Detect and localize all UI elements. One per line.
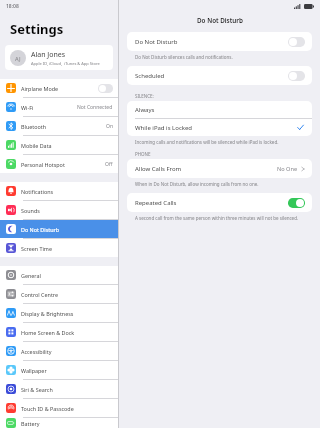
staticText: When in Do Not Disturb, allow incoming c… [135, 181, 259, 187]
staticText: Home Screen & Dock [21, 329, 75, 336]
staticText: Wi-Fi [21, 104, 34, 111]
button[interactable]: While iPad is Locked [127, 119, 312, 136]
staticText: Airplane Mode [21, 85, 59, 92]
button[interactable]: Bluetooth [0, 117, 118, 135]
button[interactable]: Repeated Calls [127, 193, 312, 212]
staticText: Mobile Data [21, 142, 52, 149]
staticText: Do Not Disturb [21, 226, 60, 233]
button[interactable]: Battery [0, 418, 118, 428]
button[interactable]: Toggle [98, 84, 113, 93]
button[interactable]: Touch ID & Passcode [0, 399, 118, 417]
staticText: Control Centre [21, 291, 59, 298]
staticText: Accessibility [21, 348, 52, 355]
staticText: Battery [21, 420, 40, 427]
staticText: A second call from the same person withi… [135, 215, 299, 221]
staticText: Sounds [21, 207, 40, 214]
button[interactable]: Airplane Mode [0, 79, 118, 97]
button[interactable]: Always [127, 101, 312, 118]
staticText: Screen Time [21, 245, 52, 252]
staticText: Display & Brightness [21, 310, 74, 317]
button[interactable]: General [0, 266, 118, 284]
staticText: SILENCE: [135, 93, 154, 99]
staticText: Do Not Disturb [197, 16, 243, 25]
button[interactable]: Mobile Data [0, 136, 118, 154]
button[interactable]: Control Centre [0, 285, 118, 303]
staticText: Personal Hotspot [21, 161, 65, 168]
staticText: Bluetooth [21, 123, 47, 130]
button[interactable]: Toggle [288, 37, 305, 47]
staticText: Wallpaper [21, 367, 47, 374]
staticText: Siri & Search [21, 386, 53, 393]
button[interactable]: Screen Time [0, 239, 118, 257]
staticText: Apple ID, iCloud, iTunes & App Store [31, 61, 100, 66]
button[interactable]: Toggle [288, 198, 305, 208]
staticText: Alan Jones [31, 50, 66, 60]
button[interactable]: Home Screen & Dock [0, 323, 118, 341]
staticText: Do Not Disturb silences calls and notifi… [135, 54, 233, 60]
button[interactable]: Wi-Fi [0, 98, 118, 116]
button[interactable]: Allow Calls From [127, 159, 312, 178]
button[interactable]: Personal Hotspot [0, 155, 118, 173]
staticText: AJ [15, 55, 21, 62]
staticText: Scheduled [135, 72, 165, 80]
staticText: Touch ID & Passcode [21, 405, 74, 412]
staticText: On [106, 123, 113, 130]
button[interactable]: Sounds [0, 201, 118, 219]
staticText: Not Connected [77, 104, 113, 111]
staticText: Incoming calls and notifications will be… [135, 139, 279, 145]
button[interactable]: Notifications [0, 182, 118, 200]
staticText: PHONE [135, 151, 151, 157]
button[interactable]: Display & Brightness [0, 304, 118, 322]
button[interactable]: Do Not Disturb [127, 32, 312, 51]
staticText: Settings [10, 20, 64, 38]
button[interactable]: Accessibility [0, 342, 118, 360]
button[interactable]: Scheduled [127, 66, 312, 85]
staticText: While iPad is Locked [135, 124, 193, 132]
staticText: Repeated Calls [135, 199, 177, 207]
staticText: Notifications [21, 188, 54, 195]
staticText: Always [135, 106, 155, 114]
button[interactable]: Siri & Search [0, 380, 118, 398]
staticText: Do Not Disturb [135, 38, 178, 46]
staticText: Off [105, 161, 113, 168]
staticText: General [21, 272, 41, 279]
button[interactable]: Do Not Disturb [0, 220, 118, 238]
staticText: 18:08 [6, 3, 19, 10]
staticText: No One [277, 165, 298, 173]
button[interactable]: AJ [5, 45, 113, 70]
other: Selected [297, 124, 304, 131]
button[interactable]: Toggle [288, 71, 305, 81]
staticText: Allow Calls From [135, 165, 182, 173]
button[interactable]: Wallpaper [0, 361, 118, 379]
